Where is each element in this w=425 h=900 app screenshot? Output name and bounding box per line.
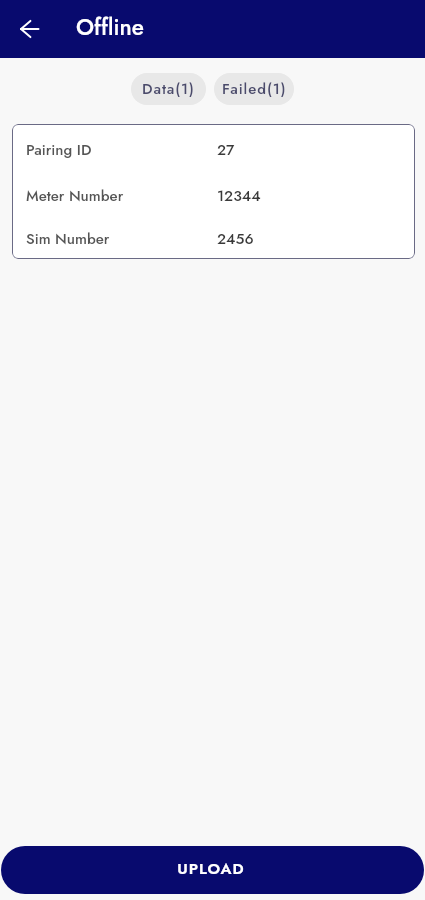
staticText: 12344 [217, 185, 261, 207]
staticText: Pairing ID [26, 139, 217, 161]
staticText: 2456 [217, 228, 254, 250]
staticText: 27 [217, 139, 235, 161]
button[interactable]: UPLOAD [1, 846, 424, 894]
button[interactable]: Failed(1) [214, 73, 294, 105]
button[interactable]: Pairing ID [12, 124, 415, 259]
staticText: Data(1) [142, 78, 195, 100]
staticText: UPLOAD [177, 857, 245, 879]
staticText: Meter Number [26, 185, 217, 207]
button[interactable]: Data(1) [131, 73, 206, 105]
staticText: Failed(1) [222, 78, 287, 100]
staticText: Sim Number [26, 228, 217, 250]
button[interactable]: Back [6, 5, 54, 53]
staticText: Offline [76, 11, 144, 44]
